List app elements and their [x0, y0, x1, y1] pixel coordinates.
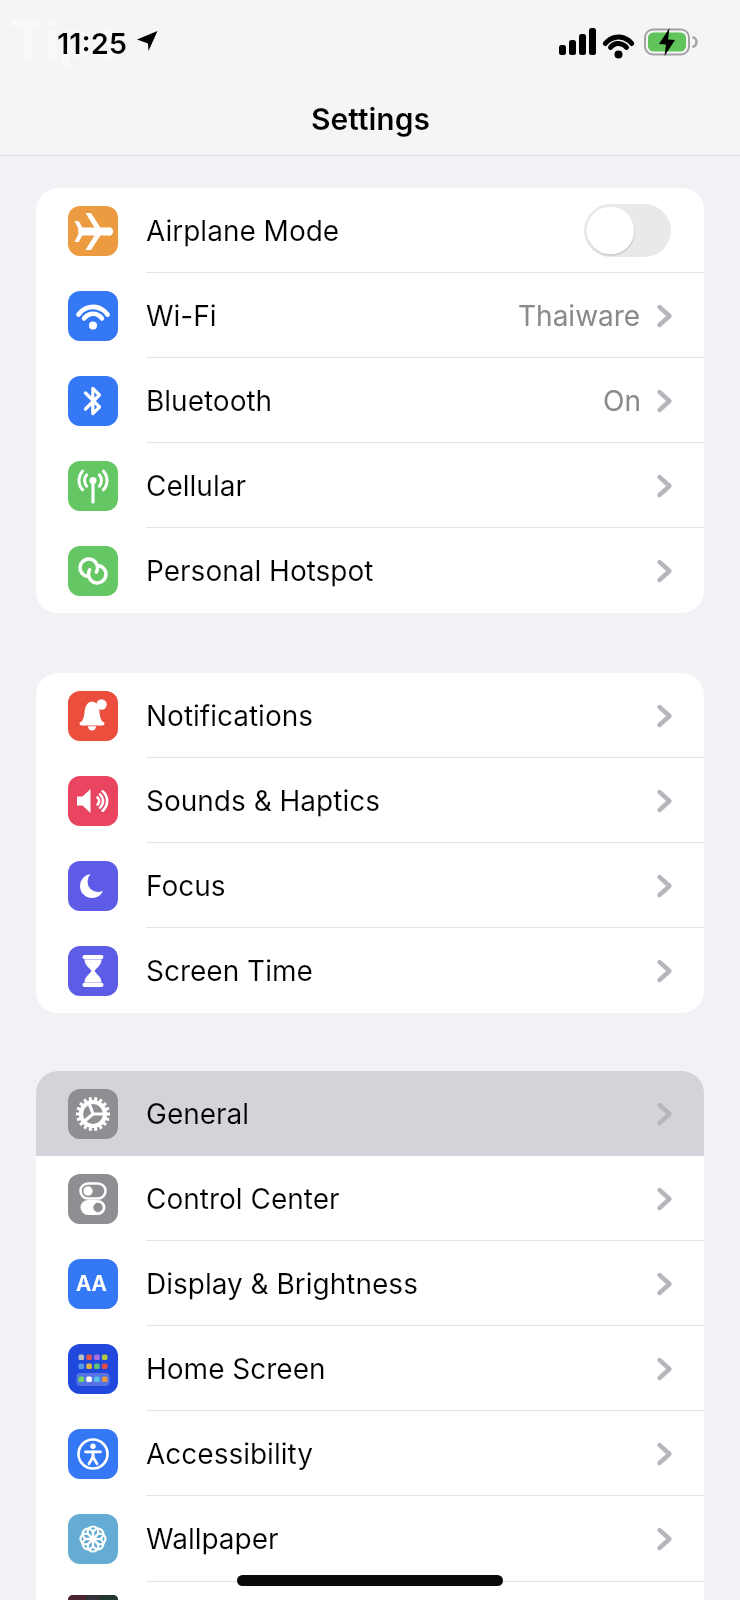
button[interactable]: General: [36, 1071, 704, 1156]
button[interactable]: Bluetooth: [36, 358, 704, 443]
button[interactable]: Wallpaper: [36, 1496, 704, 1581]
staticText: Accessibility: [146, 1437, 313, 1471]
staticText: Wallpaper: [146, 1522, 279, 1556]
staticText: Settings: [311, 101, 430, 137]
button[interactable]: Cellular: [36, 443, 704, 528]
staticText: 11:25: [57, 26, 128, 61]
staticText: Thaiware: [518, 299, 641, 333]
button[interactable]: [584, 204, 671, 257]
staticText: Focus: [146, 869, 226, 903]
button[interactable]: Sounds & Haptics: [36, 758, 704, 843]
button[interactable]: Personal Hotspot: [36, 528, 704, 613]
staticText: Tips: [10, 8, 121, 71]
staticText: Control Center: [146, 1182, 340, 1216]
button[interactable]: Focus: [36, 843, 704, 928]
staticText: Display & Brightness: [146, 1267, 418, 1301]
staticText: Screen Time: [146, 954, 313, 988]
button[interactable]: Accessibility: [36, 1411, 704, 1496]
staticText: Sounds & Haptics: [146, 784, 380, 818]
staticText: General: [146, 1097, 250, 1131]
staticText: Wi-Fi: [146, 299, 217, 333]
staticText: Cellular: [146, 469, 246, 503]
button[interactable]: Notifications: [36, 673, 704, 758]
staticText: Bluetooth: [146, 384, 273, 418]
staticText: Airplane Mode: [146, 214, 340, 248]
staticText: Notifications: [146, 699, 314, 733]
staticText: On: [603, 384, 641, 418]
button[interactable]: Wi-Fi: [36, 273, 704, 358]
staticText: Personal Hotspot: [146, 554, 374, 588]
button[interactable]: Home Screen: [36, 1326, 704, 1411]
button[interactable]: Screen Time: [36, 928, 704, 1013]
staticText: Home Screen: [146, 1352, 326, 1386]
button[interactable]: Display & Brightness: [36, 1241, 704, 1326]
button[interactable]: Control Center: [36, 1156, 704, 1241]
button[interactable]: Airplane Mode: [36, 188, 704, 273]
staticText: AA: [76, 1271, 107, 1296]
